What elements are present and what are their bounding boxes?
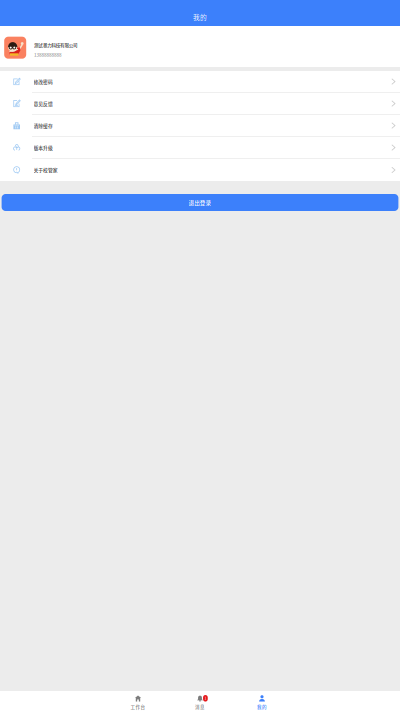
button[interactable]: 版本升级 [0, 137, 400, 159]
staticText: 退出登录 [189, 198, 211, 206]
staticText: 修改密码 [33, 78, 53, 85]
staticText: 我的 [257, 703, 267, 710]
staticText: 我的 [193, 12, 207, 22]
button[interactable]: 退出登录 [0, 194, 400, 211]
staticText: 版本升级 [33, 144, 53, 151]
button[interactable]: 意见反馈 [0, 93, 400, 115]
button[interactable]: 清除缓存 [0, 115, 400, 137]
button[interactable]: 我的 [231, 691, 293, 711]
staticText: 清除缓存 [33, 122, 53, 129]
button[interactable]: 关于校管家 [0, 159, 400, 181]
button[interactable]: 修改密码 [0, 71, 400, 93]
button[interactable]: 1 [169, 691, 231, 711]
staticText: 1 [204, 696, 206, 701]
staticText: 意见反馈 [33, 100, 53, 107]
staticText: 关于校管家 [33, 166, 58, 173]
staticText: 测试 奥力科技有限公司 [34, 42, 78, 48]
staticText: 消息 [195, 703, 205, 710]
button[interactable]: 工作台 [107, 691, 169, 711]
staticText: 13888888888 [34, 51, 62, 58]
staticText: 工作台 [131, 703, 145, 710]
